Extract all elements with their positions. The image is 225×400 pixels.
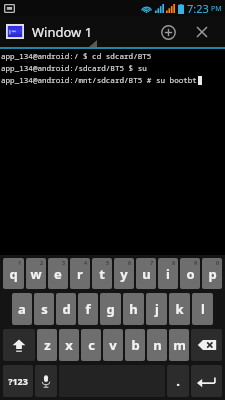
staticText: . — [176, 372, 180, 390]
button[interactable]: p — [202, 258, 222, 289]
staticText: 3 — [62, 259, 66, 266]
button[interactable]: l — [192, 293, 213, 325]
staticText: l — [201, 300, 205, 318]
button[interactable]: app_134@android:/ $ cd sdcard/BT5 — [0, 49, 225, 255]
button[interactable]: t — [92, 258, 112, 289]
staticText: u — [142, 265, 151, 283]
staticText: 9 — [194, 259, 198, 266]
staticText: 4 — [84, 259, 88, 266]
staticText: PM — [211, 4, 222, 14]
staticText: g — [106, 300, 115, 318]
staticText: q — [9, 265, 18, 283]
staticText: 2 — [40, 259, 44, 266]
staticText: x — [65, 336, 73, 354]
staticText: app_134@android:/sdcard/BT5 $ su — [1, 63, 147, 73]
staticText: r — [77, 265, 83, 283]
staticText: y — [120, 265, 128, 283]
staticText: m — [173, 336, 186, 354]
button[interactable]: u — [136, 258, 156, 289]
button[interactable]: e — [48, 258, 68, 289]
button[interactable]: x — [59, 329, 79, 361]
staticText: d — [62, 300, 71, 318]
staticText: 8 — [172, 259, 176, 266]
staticText: app_134@android:/ $ cd sdcard/BT5 — [1, 51, 152, 61]
staticText: p — [208, 265, 217, 283]
staticText: ?123 — [8, 375, 28, 387]
staticText: h — [129, 300, 138, 318]
button[interactable]: a — [12, 293, 32, 325]
staticText: s — [41, 300, 48, 318]
staticText: b — [131, 336, 140, 354]
button[interactable]: g — [100, 293, 121, 325]
button[interactable]: v — [103, 329, 123, 361]
button[interactable]: f — [78, 293, 98, 325]
button[interactable]: h — [123, 293, 144, 325]
button[interactable]: i — [158, 258, 178, 289]
staticText: app_134@android:/mnt/sdcard/BT5 # su boo… — [1, 75, 197, 85]
button[interactable]: Close window — [187, 17, 217, 47]
button[interactable]: s — [34, 293, 54, 325]
button[interactable]: New window — [153, 17, 183, 47]
button[interactable]: r — [70, 258, 90, 289]
staticText: 6 — [128, 259, 132, 266]
button[interactable]: Enter — [191, 365, 222, 397]
staticText: t — [99, 265, 105, 283]
button[interactable]: z — [37, 329, 57, 361]
staticText: 5 — [106, 259, 110, 266]
button[interactable]: n — [147, 329, 167, 361]
staticText: o — [186, 265, 195, 283]
button[interactable]: j — [146, 293, 167, 325]
button[interactable]: b — [125, 329, 145, 361]
staticText: Window 1 — [32, 23, 93, 41]
button[interactable]: Backspace — [191, 329, 222, 361]
staticText: k — [175, 300, 184, 318]
button[interactable]: c — [81, 329, 101, 361]
button[interactable]: d — [56, 293, 76, 325]
staticText: n — [153, 336, 162, 354]
staticText: f — [85, 300, 91, 318]
button[interactable]: w — [26, 258, 46, 289]
staticText: 7 — [150, 259, 154, 266]
staticText: w — [30, 265, 42, 283]
button[interactable]: y — [114, 258, 134, 289]
button[interactable]: m — [169, 329, 189, 361]
staticText: 0 — [216, 259, 220, 266]
staticText: a — [18, 300, 26, 318]
staticText: e — [54, 265, 62, 283]
staticText: 7:23 — [187, 1, 209, 16]
button[interactable]: . — [167, 365, 189, 397]
staticText: i — [166, 265, 170, 283]
staticText: z — [44, 336, 51, 354]
button[interactable]: ?123 — [3, 365, 33, 397]
button[interactable]: o — [180, 258, 200, 289]
button[interactable]: q — [3, 258, 24, 289]
staticText: c — [88, 336, 95, 354]
button[interactable]: Shift — [3, 329, 35, 361]
button[interactable]: k — [169, 293, 190, 325]
staticText: v — [109, 336, 117, 354]
button[interactable]: Voice input — [35, 365, 57, 397]
staticText: 1 — [18, 259, 22, 266]
staticText: j — [155, 300, 159, 318]
button[interactable]: Window 1 — [6, 16, 153, 47]
